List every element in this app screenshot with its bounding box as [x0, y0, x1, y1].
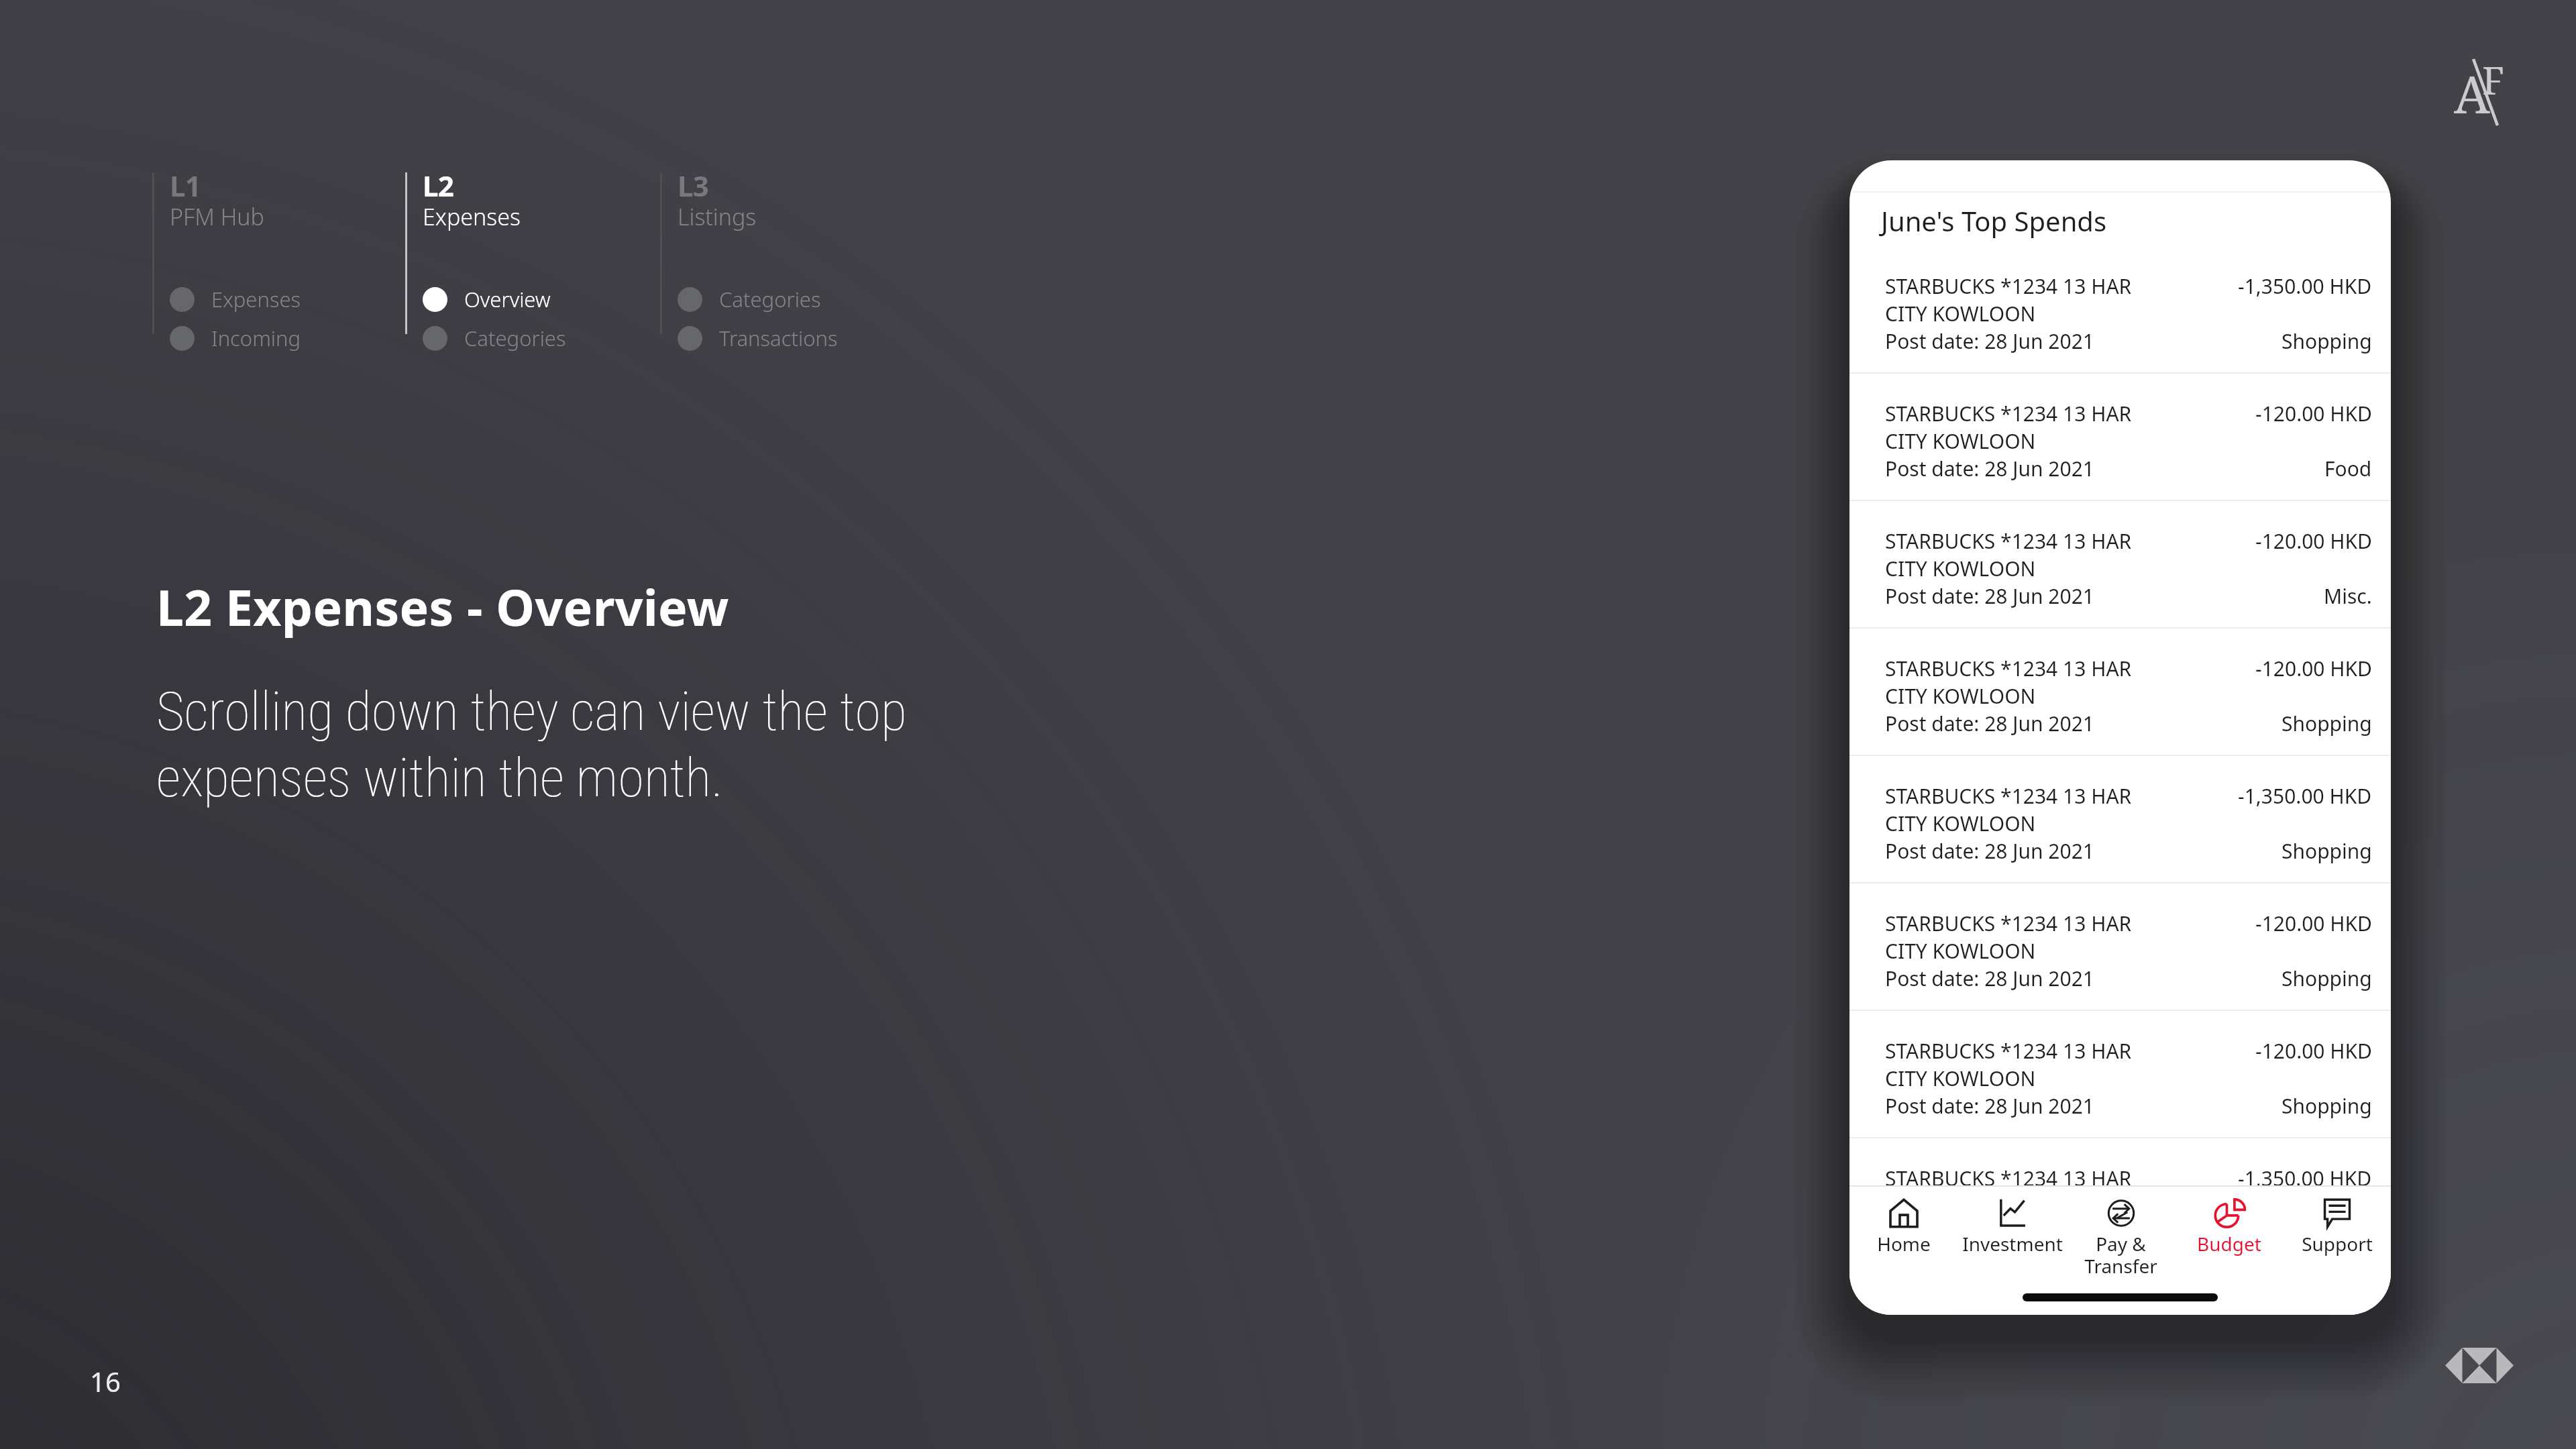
button[interactable]: STARBUCKS *1234 13 HAR: [1849, 883, 2391, 1010]
button[interactable]: Home: [1849, 1187, 1958, 1293]
staticText: -120.00 HKD: [2255, 1292, 2372, 1315]
staticText: STARBUCKS *1234 13 HAR: [1885, 272, 2132, 300]
staticText: Listings: [678, 201, 757, 232]
staticText: Post date: 28 Jun 2021: [1885, 582, 2094, 610]
staticText: Home: [1877, 1231, 1931, 1256]
staticText: Pay & Transfer: [2084, 1231, 2157, 1279]
staticText: Shopping: [2282, 1220, 2372, 1247]
staticText: Shopping: [2282, 710, 2372, 737]
staticText: -1,350.00 HKD: [2238, 782, 2372, 810]
staticText: Transactions: [719, 324, 838, 352]
staticText: -1,350.00 HKD: [2238, 272, 2372, 300]
staticText: A: [2454, 59, 2490, 129]
staticText: Investment: [1962, 1231, 2063, 1256]
staticText: STARBUCKS *1234 13 HAR: [1885, 1037, 2132, 1065]
staticText: L2: [423, 166, 453, 201]
staticText: CITY KOWLOON: [1885, 427, 2036, 455]
staticText: L3: [678, 166, 708, 201]
staticText: Shopping: [2282, 327, 2372, 355]
other: AF logo: [2452, 52, 2523, 133]
button[interactable]: Expenses: [170, 280, 301, 319]
staticText: Misc.: [2324, 582, 2372, 610]
staticText: STARBUCKS *1234 13 HAR: [1885, 655, 2132, 682]
staticText: STARBUCKS *1234 13 HAR: [1885, 910, 2132, 937]
staticText: 16: [90, 1363, 121, 1399]
staticText: Post date: 28 Jun 2021: [1885, 837, 2094, 865]
staticText: -120.00 HKD: [2255, 655, 2372, 682]
button[interactable]: STARBUCKS *1234 13 HAR: [1849, 246, 2391, 372]
staticText: Food: [2324, 455, 2372, 482]
button[interactable]: Categories: [678, 280, 821, 319]
button[interactable]: STARBUCKS *1234 13 HAR: [1849, 1011, 2391, 1137]
button[interactable]: Pay and Transfer: [2067, 1187, 2175, 1293]
staticText: CITY KOWLOON: [1885, 682, 2036, 710]
staticText: CITY KOWLOON: [1885, 555, 2036, 582]
staticText: Post date: 28 Jun 2021: [1885, 327, 2094, 355]
staticText: Scrolling down they can view the top exp…: [156, 680, 907, 809]
button[interactable]: STARBUCKS *1234 13 HAR: [1849, 1266, 2391, 1315]
staticText: CITY KOWLOON: [1885, 300, 2036, 327]
staticText: June's Top Spends: [1881, 203, 2107, 239]
button[interactable]: STARBUCKS *1234 13 HAR: [1849, 629, 2391, 755]
staticText: Expenses: [211, 285, 301, 313]
staticText: Categories: [464, 324, 566, 352]
staticText: Support: [2302, 1231, 2373, 1256]
staticText: Post date: 28 Jun 2021: [1885, 965, 2094, 992]
button[interactable]: Incoming: [170, 319, 301, 358]
staticText: CITY KOWLOON: [1885, 1192, 2036, 1220]
staticText: -120.00 HKD: [2255, 910, 2372, 937]
staticText: CITY KOWLOON: [1885, 810, 2036, 837]
staticText: L2 Expenses - Overview: [156, 574, 729, 640]
staticText: Shopping: [2282, 965, 2372, 992]
staticText: Post date: 28 Jun 2021: [1885, 455, 2094, 482]
staticText: STARBUCKS *1234 13 HAR: [1885, 1292, 2132, 1315]
staticText: -120.00 HKD: [2255, 527, 2372, 555]
button[interactable]: STARBUCKS *1234 13 HAR: [1849, 501, 2391, 627]
staticText: STARBUCKS *1234 13 HAR: [1885, 527, 2132, 555]
staticText: -1,350.00 HKD: [2238, 1165, 2372, 1192]
button[interactable]: Investment: [1958, 1187, 2067, 1293]
staticText: Post date: 28 Jun 2021: [1885, 710, 2094, 737]
staticText: Post date: 28 Jun 2021: [1885, 1092, 2094, 1120]
staticText: F: [2482, 54, 2505, 105]
button[interactable]: Overview: [423, 280, 551, 319]
staticText: CITY KOWLOON: [1885, 1065, 2036, 1092]
staticText: Expenses: [423, 201, 521, 232]
staticText: Shopping: [2282, 837, 2372, 865]
staticText: -120.00 HKD: [2255, 400, 2372, 427]
staticText: Categories: [719, 285, 821, 313]
other: HSBC logo: [2445, 1348, 2514, 1383]
staticText: Incoming: [211, 324, 301, 352]
button[interactable]: Support: [2283, 1187, 2391, 1293]
staticText: Overview: [464, 285, 551, 313]
button[interactable]: STARBUCKS *1234 13 HAR: [1849, 374, 2391, 500]
staticText: L1: [170, 166, 201, 201]
staticText: CITY KOWLOON: [1885, 937, 2036, 965]
staticText: Shopping: [2282, 1092, 2372, 1120]
staticText: -120.00 HKD: [2255, 1037, 2372, 1065]
staticText: STARBUCKS *1234 13 HAR: [1885, 782, 2132, 810]
button[interactable]: STARBUCKS *1234 13 HAR: [1849, 1138, 2391, 1265]
button[interactable]: STARBUCKS *1234 13 HAR: [1849, 756, 2391, 882]
staticText: Budget: [2197, 1231, 2261, 1256]
staticText: STARBUCKS *1234 13 HAR: [1885, 1165, 2132, 1192]
staticText: Post date: 28 Jun 2021: [1885, 1220, 2094, 1247]
button[interactable]: Budget: [2175, 1187, 2283, 1293]
staticText: PFM Hub: [170, 201, 264, 232]
staticText: STARBUCKS *1234 13 HAR: [1885, 400, 2132, 427]
button[interactable]: Transactions: [678, 319, 838, 358]
button[interactable]: Categories: [423, 319, 566, 358]
